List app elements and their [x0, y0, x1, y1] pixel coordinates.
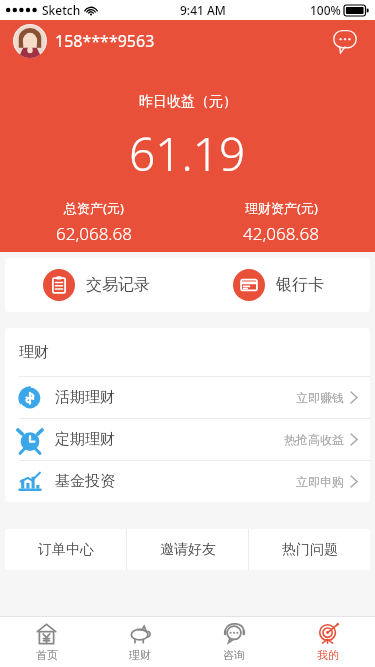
staticText: Sketch: [42, 2, 81, 18]
staticText: 理财: [19, 343, 49, 362]
staticText: 热门问题: [282, 541, 338, 559]
staticText: 总资产(元): [64, 199, 124, 217]
staticText: 热抢高收益: [284, 432, 344, 447]
staticText: 158****9563: [55, 30, 155, 52]
button[interactable]: 定期理财: [5, 419, 370, 460]
button[interactable]: 咨询: [187, 617, 281, 667]
staticText: 定期理财: [55, 430, 115, 449]
button[interactable]: 订单中心: [5, 529, 126, 570]
button[interactable]: 基金投资: [5, 461, 370, 502]
staticText: 基金投资: [55, 472, 115, 491]
staticText: 理财资产(元): [245, 199, 318, 217]
button[interactable]: 热门问题: [249, 529, 370, 570]
button[interactable]: 活期理财: [5, 377, 370, 418]
button[interactable]: Profile avatar: [13, 24, 47, 58]
staticText: 邀请好友: [160, 541, 216, 559]
staticText: 62,068.68: [56, 222, 132, 245]
staticText: 理财: [129, 648, 151, 662]
staticText: 9:41 AM: [180, 2, 226, 18]
staticText: 咨询: [223, 648, 245, 662]
button[interactable]: Messages: [331, 27, 359, 55]
button[interactable]: 我的: [281, 617, 375, 667]
staticText: 昨日收益（元）: [139, 93, 237, 111]
staticText: 42,068.68: [243, 222, 319, 245]
staticText: 首页: [36, 648, 58, 662]
button[interactable]: 邀请好友: [127, 529, 248, 570]
button[interactable]: 理财: [93, 617, 187, 667]
staticText: 银行卡: [276, 275, 324, 295]
staticText: 立即赚钱: [296, 390, 344, 405]
staticText: 我的: [317, 648, 339, 662]
staticText: 交易记录: [86, 275, 150, 295]
button[interactable]: 交易记录: [5, 258, 187, 312]
staticText: 活期理财: [55, 388, 115, 407]
staticText: 立即申购: [296, 474, 344, 489]
button[interactable]: 首页: [0, 617, 93, 667]
staticText: 订单中心: [38, 541, 94, 559]
staticText: 61.19: [129, 122, 246, 185]
staticText: 100%: [310, 2, 341, 18]
button[interactable]: 银行卡: [187, 258, 370, 312]
